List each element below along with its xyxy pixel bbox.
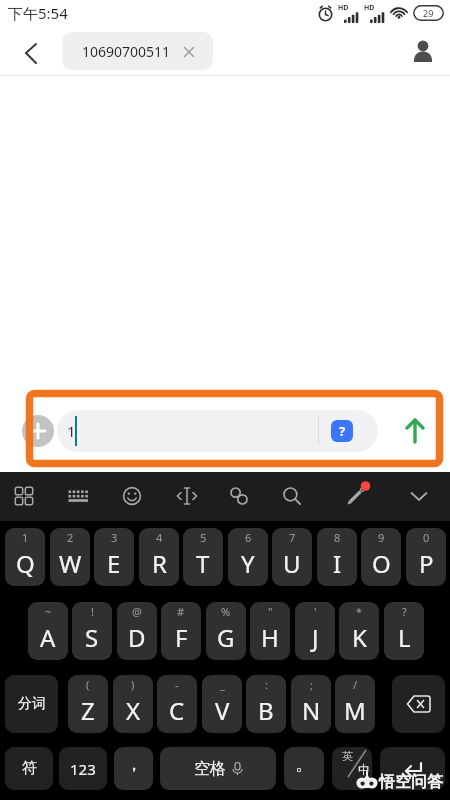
button[interactable] [402,479,436,513]
button[interactable]: 英 [332,747,372,790]
staticText: 符 [22,759,37,778]
button[interactable]: 1 [57,410,378,452]
staticText: 8 [334,530,341,545]
button[interactable] [380,747,445,790]
button[interactable]: 7 [272,528,312,586]
staticText: M [344,694,366,727]
button[interactable] [7,479,41,513]
staticText: ( [86,677,90,692]
staticText: 分词 [18,695,46,713]
staticText: Q [16,547,35,580]
button[interactable] [222,479,256,513]
button[interactable] [410,38,436,64]
staticText: X [126,694,141,727]
staticText: G [217,621,235,654]
staticText: E [107,547,121,580]
button[interactable]: 。 [284,747,324,790]
button[interactable]: 123 [59,747,107,790]
button[interactable]: 10690700511 [62,32,213,70]
staticText: HD [364,3,375,13]
staticText: C [169,694,185,727]
staticText: V [215,694,230,727]
button[interactable]: 空格 [160,747,276,790]
staticText: ? [339,422,346,440]
staticText: N [302,694,321,727]
staticText: 0 [423,530,430,545]
button[interactable] [275,479,309,513]
staticText: 1 [22,530,29,545]
button[interactable]: ( [68,675,108,733]
staticText: 中 [358,762,370,777]
button[interactable]: 0 [406,528,446,586]
button[interactable]: 2 [50,528,90,586]
staticText: ; [310,677,313,692]
staticText: " [268,604,273,619]
button[interactable]: * [339,602,379,660]
button[interactable]: ! [72,602,112,660]
staticText: 悟空问答 [379,772,443,792]
staticText: 7 [289,530,296,545]
staticText: T [196,547,210,580]
button[interactable] [170,479,204,513]
button[interactable]: 3 [94,528,134,586]
staticText: / [353,677,358,692]
button[interactable]: _ [202,675,242,733]
staticText: ) [131,677,135,692]
staticText: S [85,621,99,654]
staticText: ~ [45,604,52,619]
staticText: : [265,677,268,692]
staticText: @ [132,604,142,619]
staticText: L [398,621,411,654]
button[interactable]: 分词 [5,675,58,733]
staticText: ， [125,753,143,776]
staticText: R [152,547,167,580]
button[interactable]: ) [113,675,153,733]
button[interactable]: ? [331,420,353,442]
staticText: Z [81,694,95,727]
staticText: 29 [423,7,434,19]
button[interactable]: ， [114,747,153,790]
staticText: ? [402,604,407,619]
button[interactable]: ; [291,675,331,733]
button[interactable]: " [250,602,290,660]
staticText: % [221,604,231,619]
button[interactable] [398,414,432,448]
button[interactable] [0,26,50,76]
staticText: 1 [67,421,76,441]
staticText: A [40,621,56,654]
button[interactable] [392,675,445,733]
staticText: ' [314,604,317,619]
staticText: 空格 [194,759,226,779]
staticText: 2 [67,530,74,545]
button[interactable] [22,415,54,447]
staticText: O [372,547,391,580]
staticText: J [312,621,319,654]
button[interactable]: ' [295,602,335,660]
button[interactable]: ? [384,602,424,660]
button[interactable]: 9 [361,528,401,586]
button[interactable]: 4 [139,528,179,586]
button[interactable] [115,479,149,513]
button[interactable]: % [206,602,246,660]
button[interactable]: @ [117,602,157,660]
staticText: B [258,694,274,727]
button[interactable]: 6 [228,528,268,586]
button[interactable]: : [246,675,286,733]
staticText: P [419,547,434,580]
staticText: 。 [295,753,313,776]
button[interactable]: / [335,675,375,733]
staticText: Y [241,547,255,580]
staticText: * [356,604,363,619]
button[interactable]: 符 [5,747,53,790]
button[interactable]: # [161,602,201,660]
button[interactable]: - [157,675,197,733]
button[interactable] [61,479,95,513]
staticText: _ [220,677,225,692]
staticText: 6 [245,530,252,545]
button[interactable]: 5 [183,528,223,586]
button[interactable]: 1 [5,528,45,586]
staticText: W [59,547,82,580]
button[interactable] [339,479,373,513]
button[interactable]: ~ [28,602,68,660]
button[interactable]: 8 [317,528,357,586]
